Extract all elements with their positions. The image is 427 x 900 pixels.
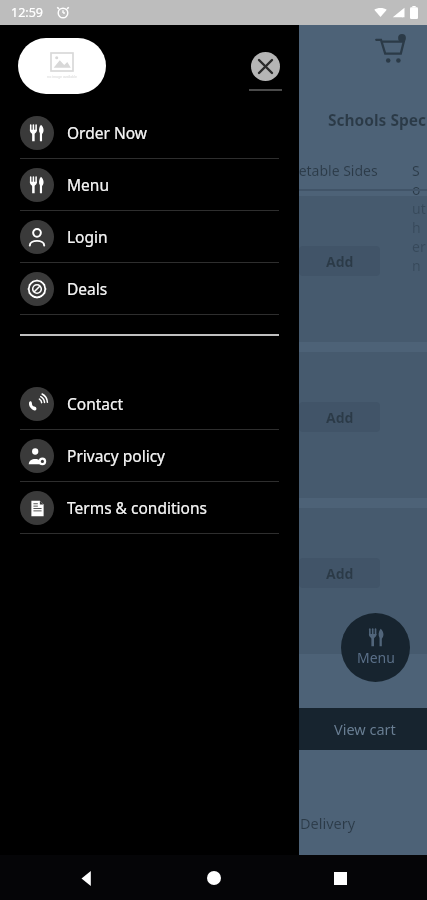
button[interactable]: Add [299,402,380,432]
button[interactable]: View cart [299,708,427,750]
staticText: Vegetable Sides [274,161,378,180]
button[interactable] [299,352,427,498]
staticText: View cart [334,719,396,739]
staticText: Menu [357,648,395,667]
staticText: no image available [47,74,77,79]
button[interactable]: Privacy policy [0,430,299,481]
button[interactable]: Menu [341,613,410,682]
staticText: Order Now [67,122,147,143]
staticText: Add [326,564,354,583]
button[interactable]: Menu [0,159,299,210]
staticText: Southern [412,161,427,275]
staticText: Menu [67,174,109,195]
button[interactable] [299,508,427,654]
button[interactable]: Cart [370,30,410,70]
button[interactable]: Add [299,558,380,588]
button[interactable]: Login [0,211,299,262]
staticText: Deals [67,278,108,299]
staticText: Privacy policy [67,445,165,466]
staticText: Terms & conditions [67,497,207,518]
staticText: Add [326,408,354,427]
staticText: Add [326,252,354,271]
button[interactable]: Order Now [0,107,299,158]
button[interactable]: Terms & conditions [0,482,299,533]
button[interactable]: Southern [412,157,427,279]
staticText: Login [67,226,108,247]
staticText: Contact [67,393,124,414]
button[interactable]: Close [251,52,280,81]
button[interactable]: Contact [0,378,299,429]
button[interactable]: Deals [0,263,299,314]
staticText: 12:59 [11,4,43,21]
button[interactable]: Add [299,246,380,276]
button[interactable]: Recent apps [325,863,355,893]
button[interactable]: Home [199,863,229,893]
button[interactable]: Vegetable Sides [274,157,378,184]
staticText: Schools Special [328,109,427,130]
staticText: Delivery [300,813,356,833]
button[interactable]: Back [72,863,102,893]
button[interactable]: Restaurant logo [18,38,106,94]
button[interactable] [299,196,427,342]
